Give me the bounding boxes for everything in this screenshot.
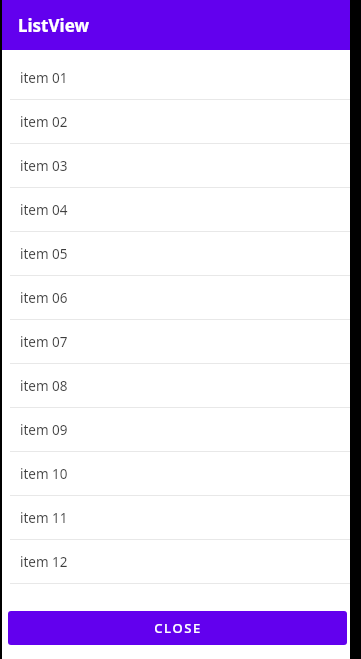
staticText: item 08 <box>20 377 68 395</box>
button[interactable]: item 05 <box>2 232 350 275</box>
button[interactable]: item 04 <box>2 188 350 231</box>
staticText: item 10 <box>20 465 68 483</box>
staticText: item 07 <box>20 333 68 351</box>
staticText: ListView <box>18 14 89 37</box>
staticText: item 06 <box>20 289 68 307</box>
staticText: item 09 <box>20 421 68 439</box>
staticText: item 03 <box>20 157 68 175</box>
button[interactable]: item 11 <box>2 496 350 539</box>
staticText: item 11 <box>20 509 68 527</box>
staticText: CLOSE <box>154 619 202 637</box>
button[interactable]: item 09 <box>2 408 350 451</box>
staticText: item 02 <box>20 113 68 131</box>
button[interactable]: item 01 <box>2 56 350 99</box>
button[interactable]: item 08 <box>2 364 350 407</box>
button[interactable]: CLOSE <box>8 611 347 645</box>
button[interactable]: item 03 <box>2 144 350 187</box>
staticText: item 04 <box>20 201 68 219</box>
button[interactable]: item 06 <box>2 276 350 319</box>
button[interactable]: item 02 <box>2 100 350 143</box>
button[interactable]: item 07 <box>2 320 350 363</box>
staticText: item 01 <box>20 69 68 87</box>
button[interactable]: item 12 <box>2 540 350 583</box>
staticText: item 12 <box>20 553 68 571</box>
staticText: item 05 <box>20 245 68 263</box>
button[interactable]: item 10 <box>2 452 350 495</box>
